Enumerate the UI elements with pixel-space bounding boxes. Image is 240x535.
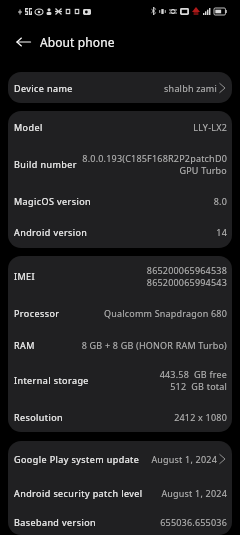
staticText: 512 GB total — [170, 380, 227, 392]
staticText: August 1, 2024 — [161, 487, 227, 499]
staticText: About phone — [40, 34, 115, 50]
staticText: 655036.655036 — [160, 516, 227, 528]
button[interactable]: Baseband version — [8, 508, 232, 535]
staticText: 8.0.0.193(C185F168R2P2patchD0 — [82, 152, 227, 164]
button[interactable]: Resolution — [8, 401, 232, 432]
staticText: 8 GB + 8 GB (HONOR RAM Turbo) — [81, 339, 227, 351]
staticText: Google Play system update — [14, 453, 140, 465]
staticText: GPU Turbo — [179, 164, 227, 176]
staticText: Resolution — [14, 411, 64, 423]
staticText: Baseband version — [14, 516, 97, 528]
staticText: Android security patch level — [14, 487, 143, 499]
staticText: Build number — [14, 158, 77, 170]
staticText: RAM — [14, 339, 35, 351]
staticText: MagicOS version — [14, 195, 92, 207]
staticText: 2412 x 1080 — [174, 411, 227, 423]
button[interactable]: IMEI — [8, 256, 232, 295]
staticText: Model — [14, 121, 43, 133]
staticText: 14 — [216, 226, 227, 238]
button[interactable]: Android version — [8, 216, 232, 248]
button[interactable]: RAM — [8, 331, 232, 359]
button[interactable]: Processor — [8, 295, 232, 331]
staticText: August 1, 2024 — [151, 453, 217, 465]
staticText: LLY-LX2 — [193, 121, 227, 133]
staticText: Internal storage — [14, 374, 89, 386]
button[interactable]: Internal storage — [8, 359, 232, 401]
staticText: 865200065994543 — [146, 276, 227, 288]
button[interactable]: Back — [15, 35, 31, 49]
staticText: Android version — [14, 226, 88, 238]
button[interactable]: Device name — [8, 72, 232, 103]
staticText: 8.0 — [213, 195, 227, 207]
button[interactable]: Android security patch level — [8, 477, 232, 508]
button[interactable]: Model — [8, 111, 232, 142]
staticText: Processor — [14, 307, 60, 319]
staticText: Device name — [14, 82, 73, 94]
button[interactable]: MagicOS version — [8, 185, 232, 216]
button[interactable]: Google Play system update — [8, 441, 232, 477]
staticText: Qualcomm Snapdragon 680 — [103, 307, 227, 319]
staticText: 865200065964538 — [146, 264, 227, 276]
button[interactable]: Build number — [8, 142, 232, 185]
staticText: 443.58 GB free — [159, 368, 227, 380]
staticText: IMEI — [14, 270, 35, 282]
staticText: shalbh zami — [164, 82, 217, 94]
